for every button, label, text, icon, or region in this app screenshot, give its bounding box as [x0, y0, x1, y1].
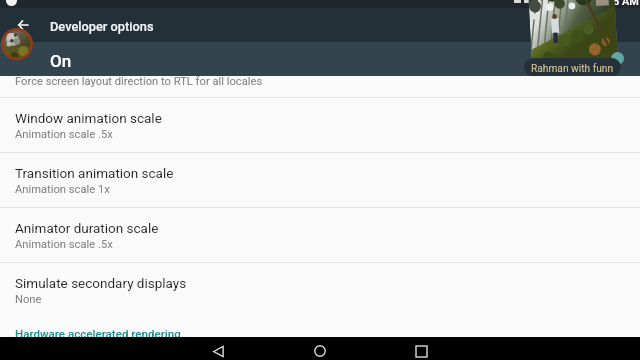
- staticText: Animator duration scale: [15, 220, 159, 236]
- staticText: None: [15, 293, 42, 306]
- button[interactable]: Home: [297, 342, 342, 360]
- button[interactable]: Window animation scale: [0, 98, 640, 153]
- staticText: 5 AM: [613, 0, 639, 8]
- staticText: Animation scale .5x: [15, 128, 113, 141]
- button[interactable]: Back: [196, 342, 241, 360]
- staticText: Simulate secondary displays: [15, 275, 187, 291]
- button[interactable]: Open chat bubble: [1, 28, 33, 60]
- button[interactable]: Animator duration scale: [0, 208, 640, 263]
- staticText: Transition animation scale: [15, 165, 174, 181]
- button[interactable]: Force screen layout direction to RTL for…: [0, 76, 640, 97]
- button[interactable]: Hardware accelerated rendering: [0, 318, 640, 337]
- staticText: Hardware accelerated rendering: [15, 327, 181, 341]
- staticText: Animation scale 1x: [15, 183, 110, 196]
- button[interactable]: Navigate up: [18, 20, 28, 30]
- staticText: Animation scale .5x: [15, 238, 113, 251]
- staticText: Developer options: [50, 19, 154, 34]
- button[interactable]: Recent apps: [399, 342, 444, 360]
- staticText: Rahman with funn: [531, 63, 614, 75]
- staticText: Window animation scale: [15, 110, 162, 126]
- button[interactable]: Transition animation scale: [0, 153, 640, 208]
- staticText: On: [50, 51, 72, 71]
- button[interactable]: Simulate secondary displays: [0, 263, 640, 318]
- staticText: Force screen layout direction to RTL for…: [15, 75, 263, 88]
- button[interactable]: Rahman with funn: [524, 58, 621, 76]
